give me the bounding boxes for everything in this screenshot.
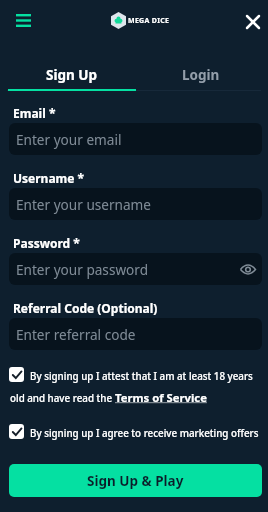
button[interactable]: Login <box>136 66 266 91</box>
staticText: Password * <box>13 235 80 251</box>
button[interactable]: Enter your password <box>9 253 262 285</box>
button[interactable]: Enter your username <box>9 188 262 220</box>
staticText: Enter your username <box>16 195 151 214</box>
button[interactable]: Sign Up & Play <box>9 464 262 497</box>
staticText: old and have read the <box>10 392 115 405</box>
staticText: Username * <box>13 170 85 186</box>
staticText: Referral Code (Optional) <box>13 300 158 316</box>
staticText: MEGA DICE <box>128 16 170 26</box>
button[interactable]: Sign Up <box>8 66 136 91</box>
button[interactable]: Show password <box>239 260 257 278</box>
staticText: Enter your email <box>16 130 122 149</box>
staticText: Sign Up <box>46 66 98 84</box>
button[interactable]: Close <box>244 13 261 30</box>
button[interactable]: Menu <box>16 14 32 27</box>
staticText: By signing up I attest that I am at leas… <box>30 370 253 383</box>
button[interactable]: By signing up I agree to receive marketi… <box>0 419 268 445</box>
button[interactable]: Terms of Service <box>115 390 207 405</box>
button[interactable]: Enter referral code <box>9 318 262 350</box>
staticText: Login <box>182 66 220 84</box>
staticText: Email * <box>13 105 56 121</box>
button[interactable]: By signing up I attest that I am at leas… <box>0 362 268 408</box>
staticText: Enter referral code <box>16 325 136 344</box>
staticText: By signing up I agree to receive marketi… <box>30 427 259 440</box>
staticText: Enter your password <box>16 260 149 279</box>
button[interactable]: Enter your email <box>9 123 262 155</box>
staticText: Sign Up & Play <box>87 472 184 490</box>
